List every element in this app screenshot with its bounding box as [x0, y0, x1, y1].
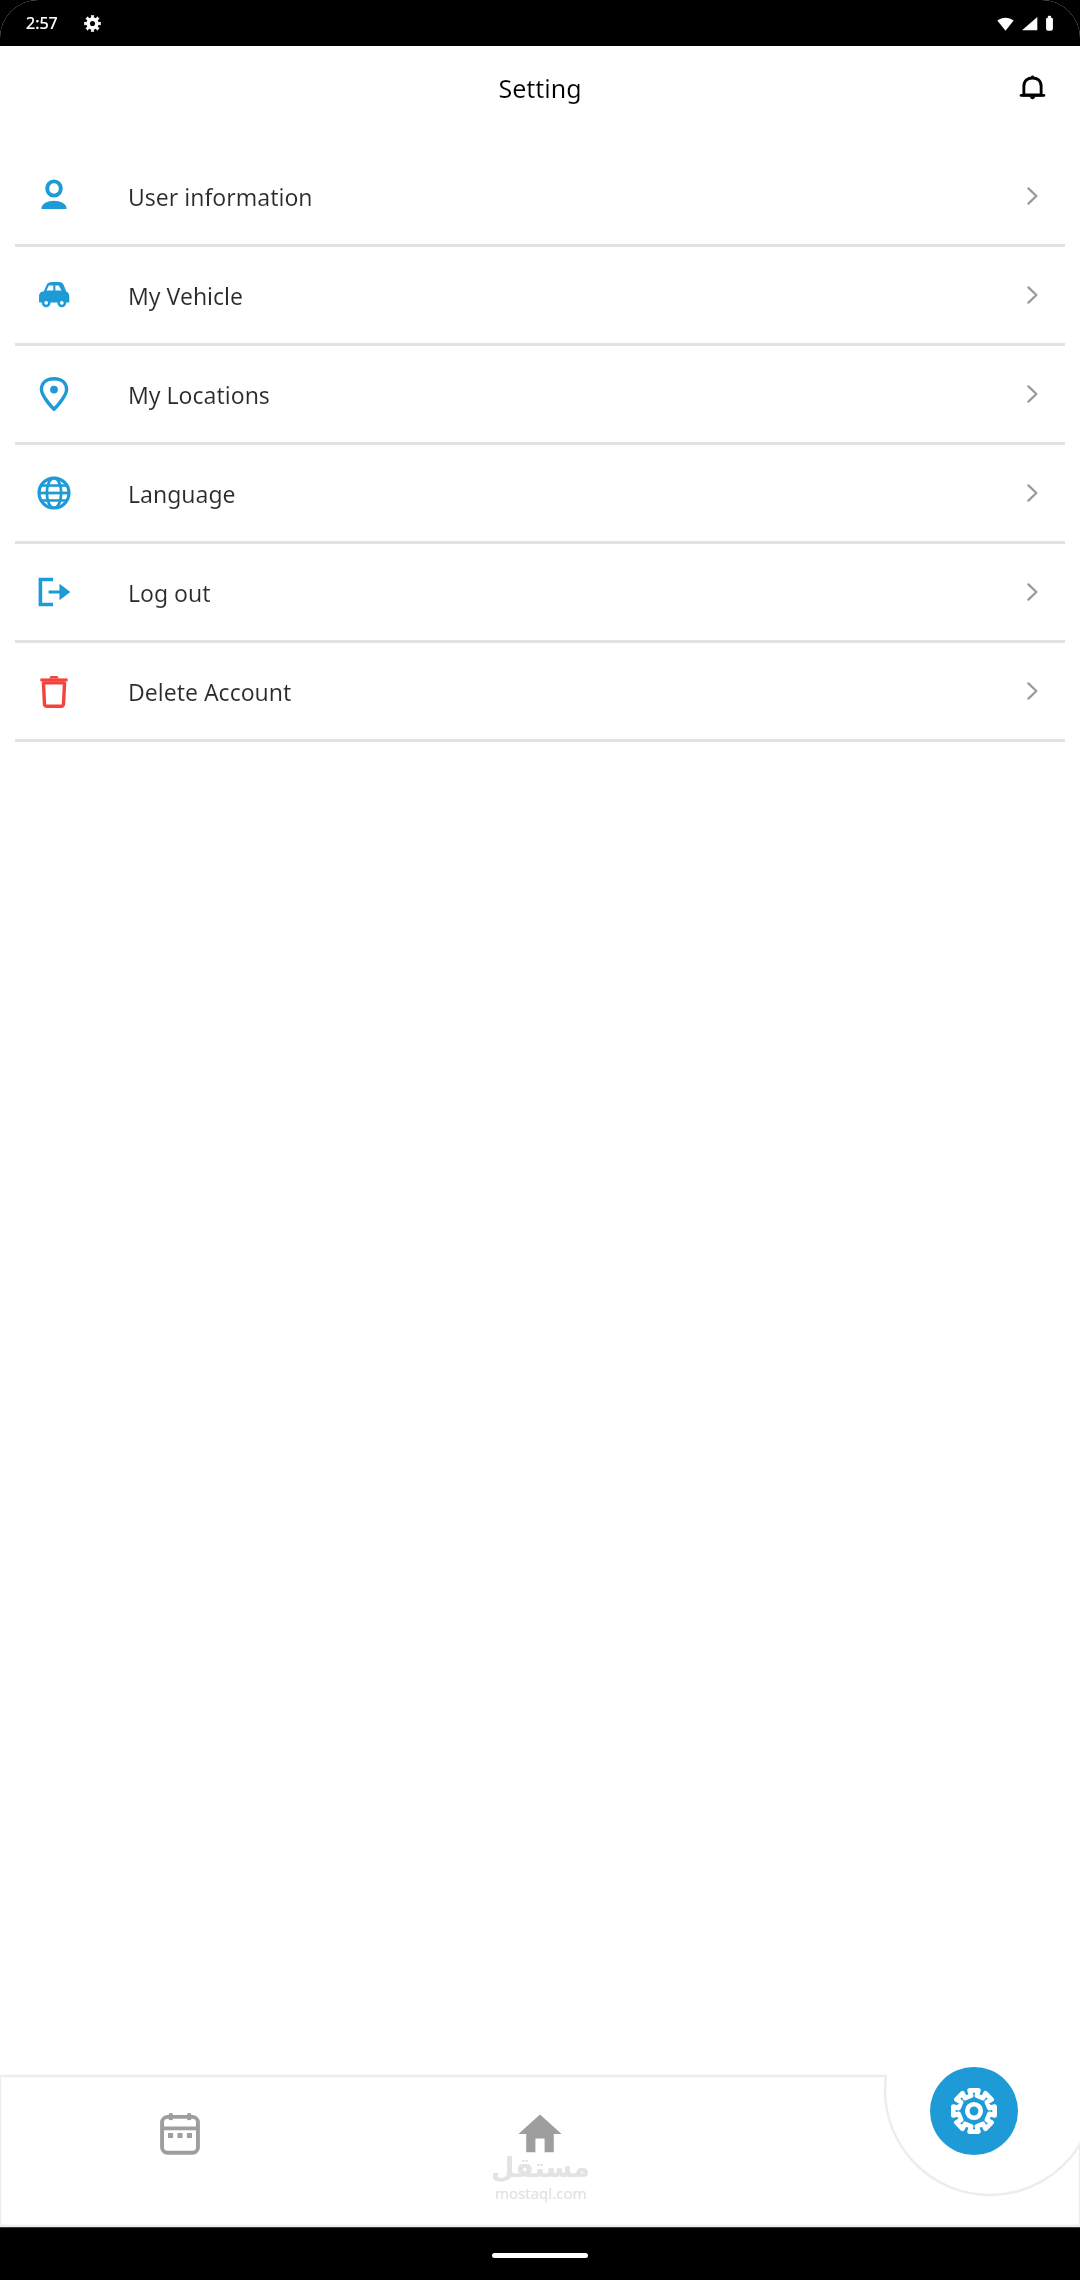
button[interactable]: Calendar — [0, 2076, 360, 2226]
button[interactable]: Log out — [0, 544, 1080, 640]
button[interactable]: Language — [0, 445, 1080, 541]
button[interactable]: Delete Account — [0, 643, 1080, 739]
button[interactable]: Settings — [930, 2067, 1018, 2155]
button[interactable]: User information — [0, 148, 1080, 244]
staticText: 2:57 — [26, 12, 58, 34]
button[interactable]: Notifications — [1006, 62, 1058, 114]
staticText: Delete Account — [128, 676, 292, 707]
button[interactable]: My Vehicle — [0, 247, 1080, 343]
staticText: My Vehicle — [128, 280, 243, 311]
staticText: mostaql.com — [495, 2183, 587, 2203]
button[interactable]: Home — [360, 2076, 720, 2226]
staticText: User information — [128, 181, 313, 212]
button[interactable]: My Locations — [0, 346, 1080, 442]
staticText: My Locations — [128, 379, 270, 410]
staticText: Log out — [128, 577, 211, 608]
staticText: مستقل — [491, 2152, 590, 2183]
staticText: Language — [128, 478, 236, 509]
staticText: Setting — [0, 71, 1080, 105]
